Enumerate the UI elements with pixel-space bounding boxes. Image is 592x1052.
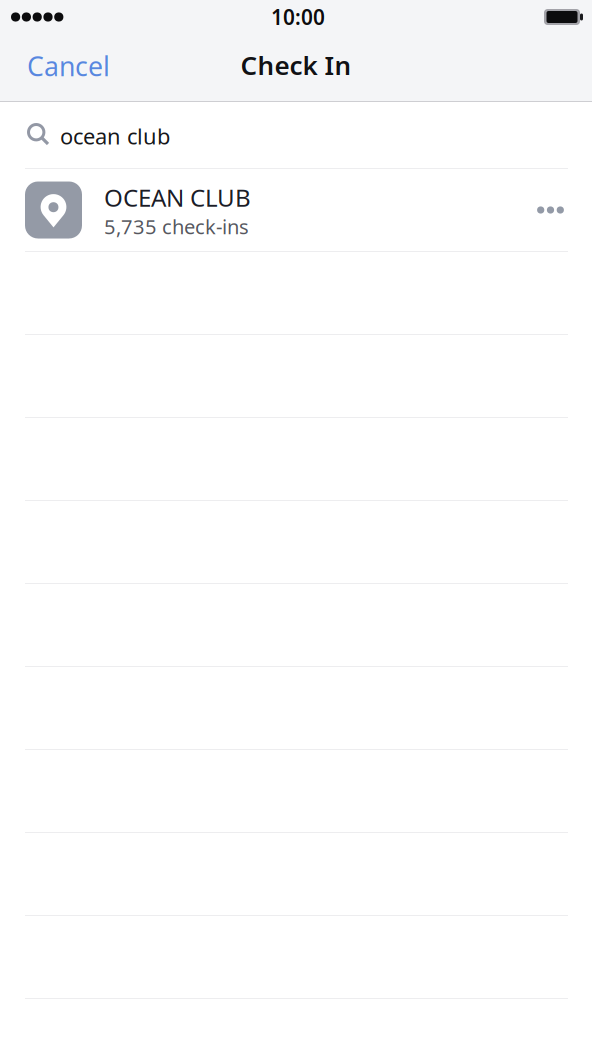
staticText: 5,735 check-ins <box>104 213 249 240</box>
staticText: 10:00 <box>271 3 325 31</box>
staticText: OCEAN CLUB <box>104 181 251 214</box>
staticText: Cancel <box>27 48 110 84</box>
button[interactable]: More options <box>523 185 578 235</box>
button[interactable]: ocean club <box>0 102 592 168</box>
staticText: ocean club <box>60 121 170 151</box>
button[interactable]: Cancel <box>0 34 128 101</box>
staticText: Check In <box>240 47 351 83</box>
button[interactable]: OCEAN CLUB <box>0 169 592 251</box>
